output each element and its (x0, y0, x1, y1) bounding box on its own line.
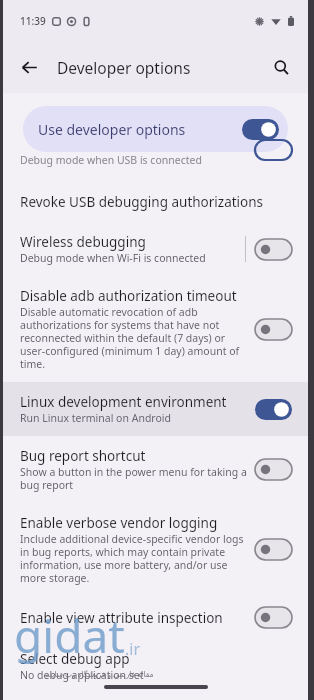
button[interactable]: Disable adb authorization timeout (3, 276, 308, 382)
staticText: مقاله فارسی و فروشگاه وب سایت (45, 669, 154, 679)
staticText: Select debug app (20, 650, 130, 668)
staticText: Disable adb authorization timeout (20, 287, 237, 305)
staticText: Run Linux terminal on Android (20, 411, 171, 425)
staticText: Show a button in the power menu for taki… (20, 465, 249, 492)
staticText: Linux development environment (20, 393, 227, 411)
button[interactable]: Wireless debugging (3, 222, 308, 276)
staticText: Debug mode when USB is connected (20, 153, 202, 167)
staticText: Enable verbose vendor logging (20, 514, 218, 532)
staticText: No debug application set (20, 668, 144, 682)
staticText: Developer options (57, 57, 191, 78)
button[interactable]: Use developer options (23, 106, 288, 152)
staticText: gidat (14, 604, 125, 667)
staticText: Wireless debugging (20, 233, 146, 251)
button[interactable]: Linux development environment (3, 382, 308, 436)
staticText: Enable view attribute inspection (20, 609, 223, 627)
button[interactable]: Select debug app (3, 639, 308, 693)
staticText: Revoke USB debugging authorizations (20, 193, 264, 211)
button[interactable]: Bug report shortcut (3, 436, 308, 503)
staticText: Debug mode when Wi-Fi is connected (20, 251, 206, 265)
button[interactable]: Revoke USB debugging authorizations (3, 182, 308, 222)
staticText: .ir (125, 638, 141, 660)
staticText: Use developer options (38, 120, 186, 139)
staticText: 11:39 (20, 14, 46, 28)
button[interactable]: Search (262, 48, 300, 86)
staticText: Disable automatic revocation of adb auth… (20, 305, 249, 371)
staticText: Bug report shortcut (20, 447, 146, 465)
button[interactable]: Enable verbose vendor logging (3, 503, 308, 596)
button[interactable]: Enable view attribute inspection (3, 596, 308, 639)
staticText: Include additional device-specific vendo… (20, 532, 249, 585)
button[interactable]: Back (10, 48, 48, 86)
